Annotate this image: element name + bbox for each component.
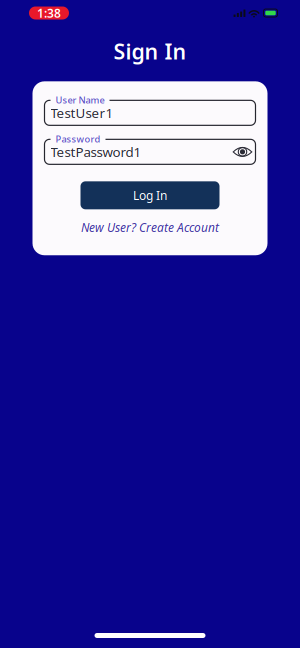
staticText: New User? Create Account <box>81 219 219 235</box>
button[interactable]: Log In <box>80 181 219 209</box>
staticText: User Name <box>55 94 104 106</box>
button[interactable]: New User? Create Account <box>81 219 219 235</box>
staticText: TestUser1 <box>50 104 113 122</box>
staticText: Password <box>55 133 100 145</box>
staticText: TestPassword1 <box>50 143 141 161</box>
staticText: 1:38 <box>37 5 61 21</box>
staticText: Log In <box>133 187 167 203</box>
staticText: Sign In <box>113 37 186 65</box>
